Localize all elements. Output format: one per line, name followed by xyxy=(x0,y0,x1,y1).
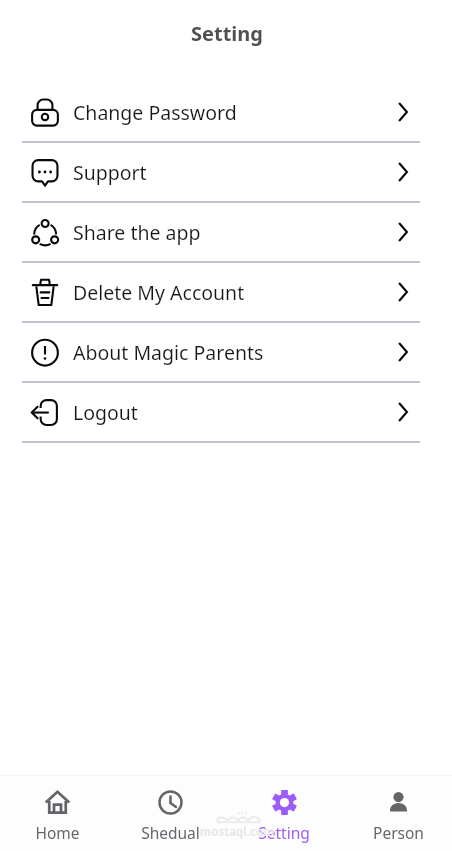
button[interactable]: Person xyxy=(348,776,448,843)
staticText: Home xyxy=(35,822,80,843)
button[interactable]: Logout xyxy=(0,382,452,442)
staticText: Share the app xyxy=(73,219,201,246)
staticText: Shedual xyxy=(141,822,200,843)
staticText: Change Password xyxy=(73,99,237,126)
staticText: Person xyxy=(373,822,424,843)
button[interactable]: Shedual xyxy=(120,776,220,843)
button[interactable]: Delete My Account xyxy=(0,262,452,322)
staticText: Logout xyxy=(73,399,138,426)
button[interactable]: About Magic Parents xyxy=(0,322,452,382)
button[interactable]: Setting xyxy=(234,776,334,843)
button[interactable]: Share the app xyxy=(0,202,452,262)
staticText: mostaql.com xyxy=(200,824,275,840)
button[interactable]: Home xyxy=(7,776,107,843)
staticText: About Magic Parents xyxy=(73,339,264,366)
staticText: Setting xyxy=(258,822,310,843)
staticText: Delete My Account xyxy=(73,279,245,306)
button[interactable]: Change Password xyxy=(0,82,452,142)
staticText: Setting xyxy=(191,20,263,47)
staticText: Support xyxy=(73,159,147,186)
button[interactable]: Support xyxy=(0,142,452,202)
